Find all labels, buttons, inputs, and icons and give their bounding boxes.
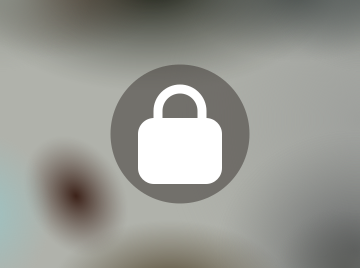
button[interactable]: Locked content — [110, 64, 249, 203]
